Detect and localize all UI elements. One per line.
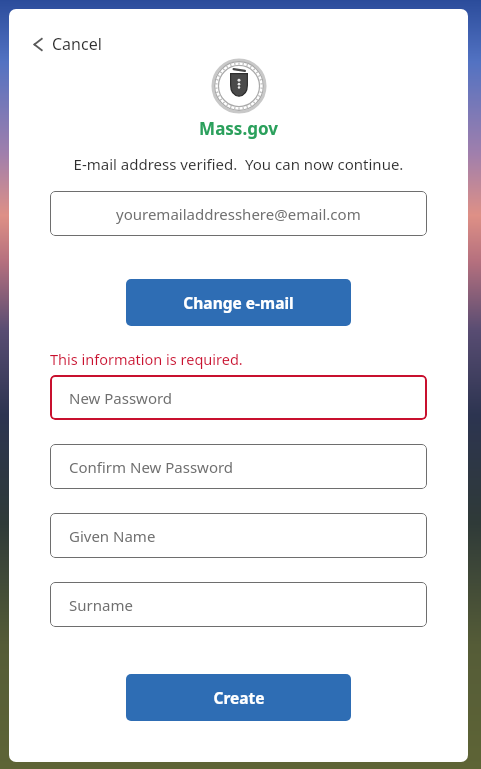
staticText: Given Name — [69, 526, 156, 546]
staticText: Cancel — [52, 33, 102, 55]
staticText: E-mail address verified. You can now con… — [9, 154, 468, 174]
staticText: New Password — [69, 388, 173, 408]
button[interactable]: Confirm New Password — [50, 444, 427, 489]
button[interactable]: Given Name — [50, 513, 427, 558]
staticText: youremailaddresshere@email.com — [116, 204, 361, 224]
staticText: This information is required. — [50, 349, 243, 369]
button[interactable]: Change e-mail — [126, 279, 351, 326]
staticText: Surname — [69, 595, 133, 615]
button[interactable]: New Password — [50, 375, 427, 420]
staticText: Confirm New Password — [69, 457, 234, 477]
button[interactable]: Surname — [50, 582, 427, 627]
button[interactable]: Create — [126, 674, 351, 721]
staticText: Mass.gov — [9, 117, 468, 140]
staticText: Create — [213, 687, 265, 708]
button[interactable]: youremailaddresshere@email.com — [50, 191, 427, 236]
staticText: Change e-mail — [183, 292, 294, 313]
button[interactable]: Cancel — [27, 29, 110, 59]
